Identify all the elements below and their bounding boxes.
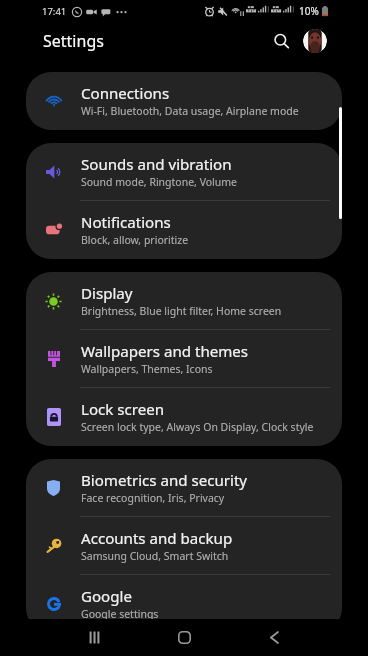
button[interactable]: Search bbox=[265, 25, 297, 57]
staticText: Samsung Cloud, Smart Switch bbox=[81, 549, 229, 563]
staticText: Lock screen bbox=[81, 399, 165, 420]
button[interactable]: Back bbox=[229, 619, 319, 656]
staticText: Block, allow, prioritize bbox=[81, 233, 189, 247]
button[interactable]: Display bbox=[26, 272, 342, 330]
staticText: Face recognition, Iris, Privacy bbox=[81, 491, 225, 505]
staticText: 10% bbox=[299, 4, 319, 18]
staticText: Wi-Fi, Bluetooth, Data usage, Airplane m… bbox=[81, 104, 299, 118]
button[interactable]: Connections bbox=[26, 72, 342, 130]
staticText: 17:41 bbox=[42, 5, 67, 18]
button[interactable]: Google bbox=[26, 575, 342, 619]
staticText: Accounts and backup bbox=[81, 528, 233, 549]
button[interactable]: Biometrics and security bbox=[26, 459, 342, 517]
button[interactable]: Wallpapers and themes bbox=[26, 330, 342, 388]
staticText: Wallpapers, Themes, Icons bbox=[81, 362, 213, 376]
staticText: Biometrics and security bbox=[81, 470, 248, 491]
button[interactable]: Notifications bbox=[26, 201, 342, 259]
button[interactable]: Sounds and vibration bbox=[26, 143, 342, 201]
staticText: Wallpapers and themes bbox=[81, 341, 249, 362]
staticText: Screen lock type, Always On Display, Clo… bbox=[81, 420, 314, 434]
staticText: Sounds and vibration bbox=[81, 154, 232, 175]
staticText: Google settings bbox=[81, 607, 159, 619]
button[interactable]: Profile bbox=[303, 29, 327, 53]
staticText: Display bbox=[81, 283, 133, 304]
staticText: Google bbox=[81, 586, 132, 607]
button[interactable]: Accounts and backup bbox=[26, 517, 342, 575]
button[interactable]: Lock screen bbox=[26, 388, 342, 446]
staticText: Connections bbox=[81, 83, 170, 104]
staticText: Settings bbox=[43, 30, 104, 52]
button[interactable]: Home bbox=[139, 619, 229, 656]
staticText: Notifications bbox=[81, 212, 171, 233]
staticText: Brightness, Blue light filter, Home scre… bbox=[81, 304, 282, 318]
button[interactable]: Recent apps bbox=[49, 619, 139, 656]
staticText: Sound mode, Ringtone, Volume bbox=[81, 175, 238, 189]
